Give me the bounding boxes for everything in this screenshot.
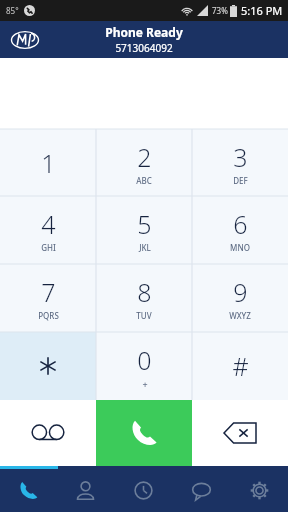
staticText: WXYZ — [229, 310, 251, 321]
staticText: # — [232, 349, 249, 383]
staticText: 9 — [233, 275, 248, 309]
staticText: 0 — [137, 343, 152, 377]
button[interactable]: Call — [96, 400, 192, 466]
button[interactable]: # — [192, 332, 288, 400]
staticText: 8 — [137, 275, 152, 309]
staticText: 4 — [41, 207, 56, 241]
staticText: JKL — [139, 242, 151, 253]
button[interactable]: 2 — [96, 129, 192, 196]
staticText: 7 — [41, 275, 56, 309]
staticText: 73% — [212, 5, 228, 16]
button[interactable] — [0, 332, 96, 400]
button[interactable]: Backspace — [192, 400, 288, 466]
button[interactable]: Messages — [172, 469, 230, 512]
button[interactable]: Logo — [10, 25, 40, 55]
staticText: TUV — [136, 310, 152, 321]
button[interactable]: 1 — [0, 129, 96, 196]
button[interactable]: Contacts — [57, 469, 114, 512]
staticText: ABC — [136, 175, 152, 186]
button[interactable]: Dialer — [0, 469, 57, 512]
staticText: 85° — [6, 5, 19, 16]
staticText: 2 — [137, 140, 152, 174]
button[interactable]: 7 — [0, 264, 96, 332]
button[interactable]: 6 — [192, 196, 288, 264]
button[interactable]: Recents — [114, 469, 172, 512]
button[interactable]: 4 — [0, 196, 96, 264]
staticText: DEF — [233, 175, 248, 186]
button[interactable]: 5 — [96, 196, 192, 264]
button[interactable]: 0 — [96, 332, 192, 400]
button[interactable]: Settings — [230, 469, 288, 512]
button[interactable]: 8 — [96, 264, 192, 332]
staticText: 1 — [41, 146, 56, 180]
staticText: 6 — [233, 207, 248, 241]
button[interactable]: 3 — [192, 129, 288, 196]
staticText: MNO — [230, 242, 250, 253]
staticText: 5713064092 — [115, 41, 173, 55]
button[interactable]: 9 — [192, 264, 288, 332]
button[interactable]: Voicemail — [0, 400, 96, 466]
staticText: + — [142, 378, 148, 390]
staticText: PQRS — [38, 310, 59, 321]
staticText: 3 — [233, 140, 248, 174]
staticText: 5 — [137, 207, 152, 241]
staticText: Phone Ready — [105, 24, 183, 40]
staticText: GHI — [41, 242, 56, 253]
staticText: 5:16 PM — [241, 3, 283, 18]
